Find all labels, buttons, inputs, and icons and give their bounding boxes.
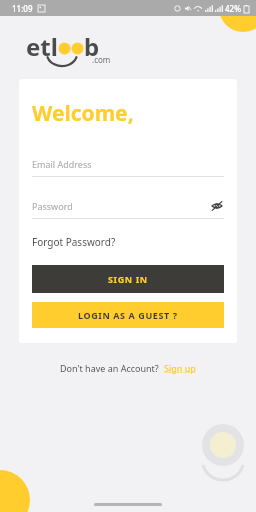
- staticText: b: [84, 30, 100, 63]
- staticText: 42%: [225, 3, 241, 14]
- staticText: Don't have an Account?: [60, 362, 159, 374]
- button[interactable]: SIGN IN: [32, 265, 224, 293]
- staticText: Password: [32, 200, 73, 212]
- button[interactable]: Password: [32, 198, 224, 214]
- staticText: Sign up: [164, 362, 196, 374]
- button[interactable]: Forgot Password?: [32, 235, 116, 249]
- button[interactable]: Show password: [210, 199, 224, 213]
- staticText: .com: [92, 54, 111, 65]
- staticText: 11:09: [12, 3, 33, 14]
- button[interactable]: Email Address: [32, 156, 224, 172]
- button[interactable]: Sign up: [164, 362, 196, 374]
- button[interactable]: LOGIN AS A GUEST ?: [32, 302, 224, 328]
- staticText: SIGN IN: [108, 273, 148, 285]
- staticText: LOGIN AS A GUEST ?: [78, 309, 178, 321]
- staticText: Forgot Password?: [32, 235, 116, 249]
- staticText: Welcome,: [32, 99, 134, 128]
- staticText: Email Address: [32, 158, 92, 170]
- staticText: etl: [26, 30, 58, 63]
